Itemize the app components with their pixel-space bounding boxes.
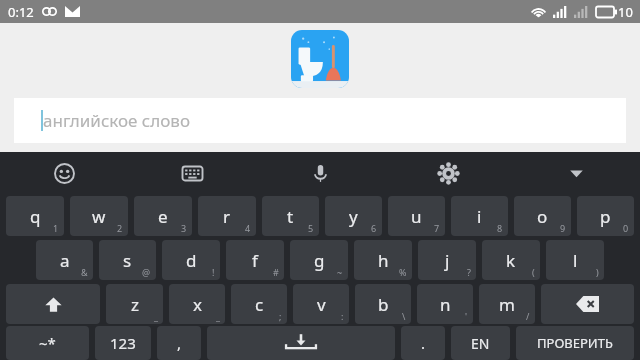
staticText: b <box>378 293 389 316</box>
button[interactable]: h <box>354 240 412 280</box>
staticText: # <box>273 266 279 278</box>
staticText: : <box>341 310 344 322</box>
button[interactable]: l <box>546 240 604 280</box>
staticText: 5 <box>308 222 314 234</box>
staticText: h <box>378 249 389 272</box>
button[interactable]: t <box>262 196 319 236</box>
button[interactable]: Space <box>207 326 395 360</box>
staticText: g <box>314 249 325 272</box>
staticText: p <box>600 205 611 228</box>
button[interactable]: u <box>388 196 445 236</box>
button[interactable]: k <box>482 240 540 280</box>
button[interactable]: Emoji <box>0 152 128 194</box>
button[interactable]: f <box>226 240 284 280</box>
staticText: f <box>252 249 258 272</box>
staticText: d <box>186 249 197 272</box>
button[interactable]: z <box>106 284 163 324</box>
staticText: 6 <box>371 222 377 234</box>
staticText: ) <box>596 266 599 278</box>
staticText: \ <box>402 310 406 322</box>
button[interactable]: Toilet app icon <box>291 30 349 88</box>
staticText: _ <box>154 310 158 322</box>
button[interactable]: x <box>169 284 225 324</box>
button[interactable]: 123 <box>95 326 151 360</box>
button[interactable]: q <box>6 196 64 236</box>
staticText: 123 <box>110 333 136 353</box>
button[interactable]: c <box>231 284 287 324</box>
staticText: ; <box>279 310 282 322</box>
staticText: 0:12 <box>8 3 34 21</box>
button[interactable]: Settings <box>384 152 512 194</box>
button[interactable]: d <box>162 240 220 280</box>
button[interactable]: r <box>198 196 256 236</box>
button[interactable]: Shift <box>6 284 100 324</box>
staticText: u <box>411 205 422 228</box>
button[interactable]: Backspace <box>541 284 634 324</box>
button[interactable]: b <box>355 284 411 324</box>
button[interactable]: g <box>290 240 348 280</box>
button[interactable]: w <box>70 196 128 236</box>
staticText: , <box>177 333 182 353</box>
staticText: o <box>537 205 548 228</box>
staticText: 1 <box>53 222 59 234</box>
staticText: l <box>573 249 578 272</box>
staticText: @ <box>142 266 151 278</box>
staticText: 0 <box>623 222 629 234</box>
button[interactable]: n <box>417 284 473 324</box>
button[interactable]: . <box>401 326 445 360</box>
staticText: q <box>30 205 41 228</box>
staticText: r <box>223 205 231 228</box>
button[interactable]: ~* <box>6 326 89 360</box>
staticText: 3 <box>181 222 187 234</box>
staticText: x <box>193 293 202 316</box>
button[interactable]: j <box>418 240 476 280</box>
staticText: i <box>477 205 482 228</box>
staticText: ~ <box>337 266 343 278</box>
staticText: % <box>399 266 407 278</box>
staticText: 4 <box>245 222 251 234</box>
staticText: 10 <box>618 3 633 21</box>
button[interactable]: Hide keyboard <box>512 152 640 194</box>
staticText: ? <box>467 266 471 278</box>
staticText: & <box>81 266 88 278</box>
staticText: ПРОВЕРИТЬ <box>537 334 613 352</box>
staticText: w <box>92 205 106 228</box>
staticText: ! <box>212 266 215 278</box>
button[interactable]: Voice input <box>256 152 384 194</box>
staticText: ( <box>532 266 535 278</box>
staticText: ' <box>465 310 468 322</box>
button[interactable]: o <box>514 196 571 236</box>
button[interactable]: m <box>479 284 535 324</box>
staticText: m <box>499 293 515 316</box>
button[interactable]: EN <box>451 326 510 360</box>
staticText: EN <box>471 334 490 353</box>
button[interactable]: Keyboard layout <box>128 152 256 194</box>
button[interactable]: s <box>99 240 156 280</box>
staticText: v <box>317 293 326 316</box>
button[interactable]: i <box>451 196 508 236</box>
button[interactable]: y <box>325 196 382 236</box>
button[interactable]: английское слово <box>14 98 626 143</box>
button[interactable]: ПРОВЕРИТЬ <box>516 326 634 360</box>
staticText: _ <box>216 310 220 322</box>
staticText: c <box>255 293 264 316</box>
button[interactable]: p <box>577 196 634 236</box>
staticText: a <box>60 249 70 272</box>
staticText: ~* <box>39 333 56 353</box>
button[interactable]: a <box>36 240 93 280</box>
staticText: английское слово <box>43 109 191 132</box>
staticText: . <box>421 333 426 353</box>
button[interactable]: , <box>157 326 201 360</box>
button[interactable]: v <box>293 284 349 324</box>
staticText: 9 <box>560 222 566 234</box>
staticText: e <box>158 205 168 228</box>
staticText: j <box>445 249 450 272</box>
staticText: 2 <box>117 222 123 234</box>
button[interactable]: e <box>134 196 192 236</box>
staticText: y <box>349 205 358 228</box>
staticText: k <box>506 249 516 272</box>
staticText: 7 <box>434 222 440 234</box>
staticText: s <box>123 249 132 272</box>
staticText: z <box>131 293 139 316</box>
staticText: t <box>287 205 294 228</box>
